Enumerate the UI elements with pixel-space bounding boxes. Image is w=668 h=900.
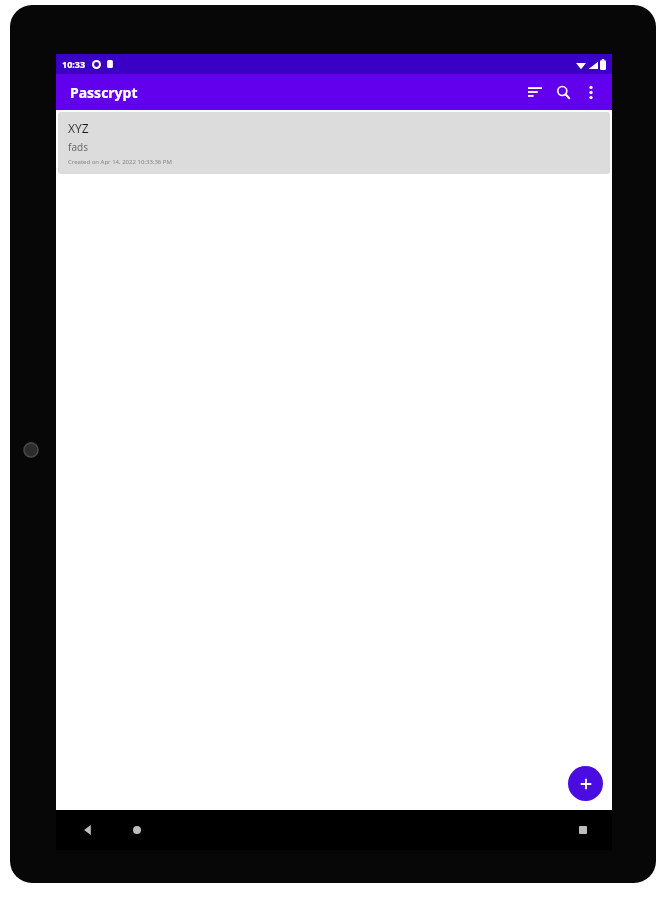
staticText: Created on Apr 14, 2022 10:33:36 PM [68,158,172,166]
button[interactable]: More options [578,79,604,105]
button[interactable]: XYZ [58,112,610,174]
button[interactable]: Home [127,820,147,840]
button[interactable]: Sort [522,79,548,105]
staticText: Passcrypt [70,83,138,102]
staticText: fads [68,140,88,154]
button[interactable]: Search [550,79,576,105]
staticText: 10:33 [62,58,86,70]
button[interactable]: Back [78,820,98,840]
button[interactable]: Recent apps [573,820,593,840]
staticText: XYZ [68,120,89,136]
button[interactable]: Add new entry [568,766,603,801]
